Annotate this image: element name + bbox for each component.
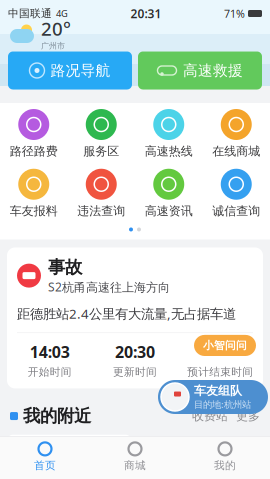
button[interactable]: 高速资讯	[135, 169, 202, 218]
staticText: 收费站 更多	[192, 409, 260, 423]
staticText: 小智问问	[203, 339, 247, 352]
staticText: 距德胜站2.4公里有大流量,无占据车道	[17, 305, 236, 322]
staticText: 高速热线	[145, 144, 193, 159]
staticText: 开始时间	[28, 365, 72, 378]
button[interactable]: 路况导航	[8, 51, 132, 89]
staticText: 事故	[48, 256, 82, 278]
button[interactable]: 高速救援	[138, 51, 262, 89]
staticText: 目的地:杭州站	[194, 398, 251, 411]
staticText: 诚信查询	[212, 204, 260, 218]
staticText: - -	[213, 341, 227, 362]
staticText: 高速救援	[183, 61, 243, 79]
staticText: 20°	[41, 16, 71, 41]
staticText: 20:30	[115, 341, 155, 362]
staticText: 我的	[214, 459, 236, 472]
staticText: 在线商城	[212, 144, 260, 159]
button[interactable]: 路径路费	[0, 109, 67, 159]
button[interactable]: 小智问问	[194, 335, 256, 356]
button[interactable]: 收费站 更多	[192, 409, 260, 423]
staticText: 4G	[56, 7, 68, 20]
staticText: 高速资讯	[145, 204, 193, 218]
button[interactable]: 商城	[90, 442, 180, 472]
staticText: 中国联通	[8, 7, 52, 20]
staticText: 20:31	[130, 5, 161, 21]
staticText: G40	[14, 457, 37, 473]
button[interactable]: 首页	[0, 442, 90, 472]
staticText: 我的附近	[23, 405, 91, 427]
staticText: 路径路费	[10, 144, 58, 159]
button[interactable]: 国家高速	[138, 439, 263, 479]
button[interactable]: 车友组队	[158, 380, 268, 414]
button[interactable]: 车友报料	[0, 169, 67, 218]
button[interactable]: 在线商城	[202, 109, 270, 159]
staticText: 71%	[224, 6, 245, 21]
button[interactable]: 我的	[180, 442, 270, 472]
staticText: 车友组队	[194, 383, 242, 398]
button[interactable]: 诚信查询	[202, 169, 270, 218]
button[interactable]: 高速热线	[135, 109, 202, 159]
staticText: 更新时间	[113, 365, 157, 378]
staticText: 车友报料	[10, 204, 58, 218]
staticText: 服务区	[83, 144, 119, 159]
staticText: 路况导航	[50, 61, 110, 79]
staticText: 商城	[124, 459, 146, 472]
button[interactable]: 国家高速	[7, 435, 131, 479]
staticText: 广州市	[41, 41, 65, 51]
button[interactable]: 服务区	[67, 109, 135, 159]
staticText: 预计结束时间	[187, 365, 253, 378]
staticText: S2杭甬高速往上海方向	[48, 279, 170, 295]
staticText: 首页	[34, 459, 56, 472]
staticText: 浙赣主线站	[44, 443, 104, 479]
button[interactable]: 事故	[7, 247, 263, 388]
staticText: 违法查询	[77, 204, 125, 218]
staticText: 14:03	[30, 341, 70, 362]
staticText: 琠川站	[175, 452, 220, 470]
button[interactable]: 违法查询	[67, 169, 135, 218]
